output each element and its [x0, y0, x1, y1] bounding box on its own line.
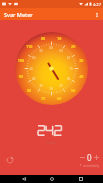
staticText: Svar Meter [4, 11, 33, 18]
staticText: 0 [87, 152, 92, 163]
staticText: 4:27 [93, 2, 101, 7]
staticText: index [46, 140, 57, 145]
button[interactable]: Reset [2, 152, 18, 168]
button[interactable]: Back [18, 175, 29, 183]
button[interactable]: More options [91, 9, 102, 20]
staticText: sensitivity [83, 163, 100, 168]
button[interactable]: Increase sensitivity [92, 153, 101, 162]
button[interactable]: Recents [75, 175, 86, 183]
button[interactable]: Home [46, 175, 57, 183]
button[interactable]: Decrease sensitivity [78, 153, 87, 162]
